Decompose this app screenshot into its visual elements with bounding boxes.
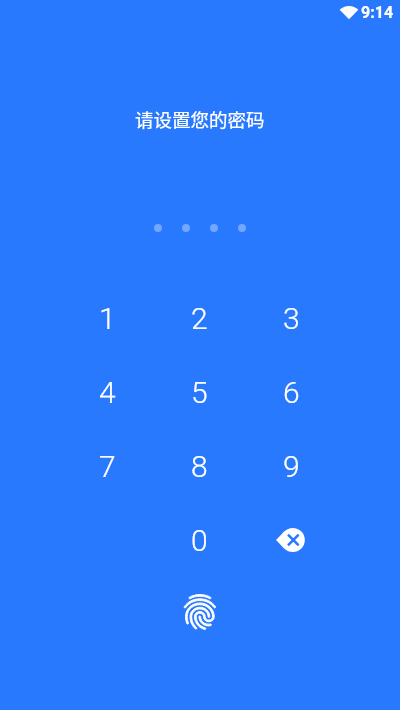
staticText: 1 <box>99 301 116 336</box>
button[interactable]: 8 <box>153 429 245 503</box>
staticText: 9:14 <box>361 3 394 22</box>
staticText: 请设置您的密码 <box>135 106 265 133</box>
staticText: 7 <box>99 449 116 484</box>
button[interactable]: 1 <box>61 281 153 355</box>
staticText: 2 <box>191 301 208 336</box>
staticText: 8 <box>191 449 208 484</box>
staticText: 9 <box>283 449 300 484</box>
staticText: 4 <box>99 375 116 410</box>
staticText: 5 <box>191 375 208 410</box>
button[interactable]: 6 <box>245 355 337 429</box>
button[interactable]: 3 <box>245 281 337 355</box>
button[interactable]: 4 <box>61 355 153 429</box>
button[interactable]: 5 <box>153 355 245 429</box>
button[interactable]: 2 <box>153 281 245 355</box>
staticText: 6 <box>283 375 300 410</box>
staticText: 3 <box>283 301 300 336</box>
button[interactable]: 7 <box>61 429 153 503</box>
button[interactable] <box>182 594 218 630</box>
button[interactable] <box>245 503 337 577</box>
button[interactable]: 0 <box>153 503 245 577</box>
button[interactable]: 9 <box>245 429 337 503</box>
staticText: 0 <box>191 523 208 558</box>
